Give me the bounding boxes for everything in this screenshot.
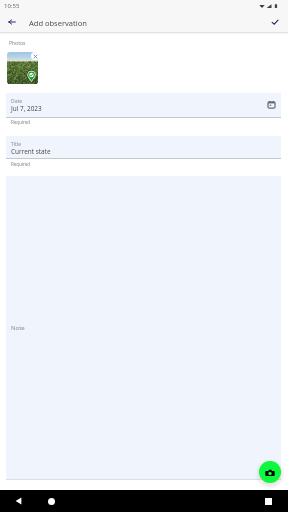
- staticText: Jul 7, 2023: [11, 104, 42, 113]
- staticText: Required: [11, 119, 31, 125]
- button[interactable]: Save: [265, 12, 285, 32]
- button[interactable]: Back: [11, 493, 27, 509]
- button[interactable]: Back: [2, 12, 22, 32]
- button[interactable]: Note: [6, 176, 281, 480]
- button[interactable]: Title: [6, 136, 281, 159]
- button[interactable]: Photo: [7, 52, 38, 84]
- button[interactable]: Take photo: [259, 461, 281, 483]
- button[interactable]: Date: [6, 93, 281, 118]
- button[interactable]: Home: [43, 493, 59, 509]
- staticText: Add observation: [29, 18, 87, 28]
- staticText: Title: [11, 141, 21, 148]
- staticText: Required: [11, 161, 31, 167]
- staticText: Photos: [9, 40, 26, 47]
- staticText: Current state: [11, 147, 51, 156]
- button[interactable]: Remove photo: [31, 52, 39, 60]
- staticText: Date: [11, 98, 23, 105]
- staticText: 10:55: [4, 2, 20, 10]
- staticText: Note: [11, 324, 25, 332]
- button[interactable]: Recent apps: [260, 493, 276, 509]
